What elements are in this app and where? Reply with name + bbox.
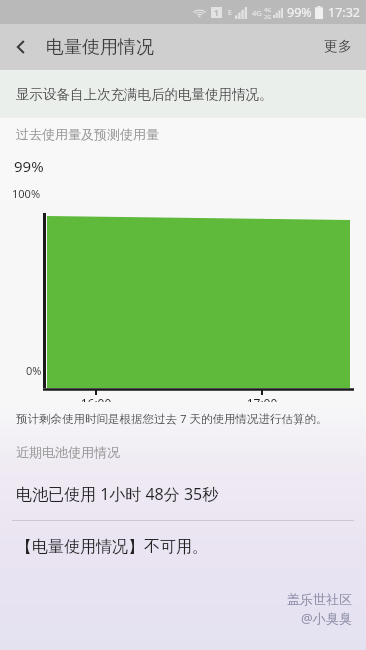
staticText: 4G [264,6,272,13]
staticText: 99% [287,4,312,21]
button[interactable]: 更多 [310,24,366,70]
staticText: 近期电池使用情况 [16,444,120,460]
staticText: 100% [12,186,41,201]
staticText: 更多 [324,38,352,56]
staticText: 2G [264,13,272,20]
staticText: 4G [252,8,262,18]
staticText: 电池已使用 1小时 48分 35秒 [16,483,219,505]
button[interactable]: 电池已使用 1小时 48分 35秒 [0,468,366,520]
staticText: 16:00 [76,395,116,402]
staticText: 预计剩余使用时间是根据您过去 7 天的使用情况进行估算的。 [16,411,328,427]
staticText: 99% [14,156,44,176]
staticText: 0% [26,363,42,378]
button[interactable]: 返回 [0,24,42,70]
staticText: 【电量使用情况】不可用。 [16,537,208,557]
staticText: E [228,8,232,18]
staticText: 17:00 [242,395,282,402]
staticText: 1 [214,7,219,18]
staticText: 电量使用情况 [46,36,154,59]
staticText: 17:32 [328,4,360,21]
button[interactable]: 【电量使用情况】不可用。 [0,521,366,573]
staticText: 盖乐世社区 [287,591,352,607]
staticText: 过去使用量及预测使用量 [16,126,159,142]
staticText: 显示设备自上次充满电后的电量使用情况。 [16,86,273,103]
staticText: @小臭臭 [301,609,352,627]
